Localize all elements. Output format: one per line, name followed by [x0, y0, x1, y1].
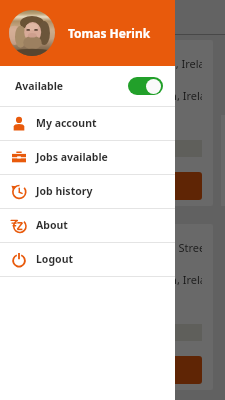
staticText: Handyman needed at 21 Main Street,: [20, 240, 202, 255]
staticText: Job history: [36, 184, 93, 198]
staticText: Tomas Herink: [68, 25, 151, 41]
staticText: Logout: [36, 252, 74, 266]
staticText: Cleaning job needed in Dublin, Ireland: [20, 56, 202, 71]
button[interactable]: Available: [0, 66, 175, 106]
staticText: My account: [36, 116, 97, 130]
staticText: About: [36, 218, 68, 232]
button[interactable]: My account: [0, 107, 175, 140]
button[interactable]: Jobs available: [0, 141, 175, 174]
staticText: Jobs available: [36, 150, 108, 164]
button[interactable]: About: [0, 209, 175, 242]
staticText: Ranelagh, Dublin 6, Co. Dublin, Ireland: [20, 88, 202, 103]
button[interactable]: Logout: [0, 243, 175, 276]
button[interactable]: Job history: [0, 175, 175, 208]
staticText: Ranelagh, Dublin 6, Co. Dublin, Ireland: [20, 272, 202, 287]
staticText: Available: [15, 79, 64, 93]
